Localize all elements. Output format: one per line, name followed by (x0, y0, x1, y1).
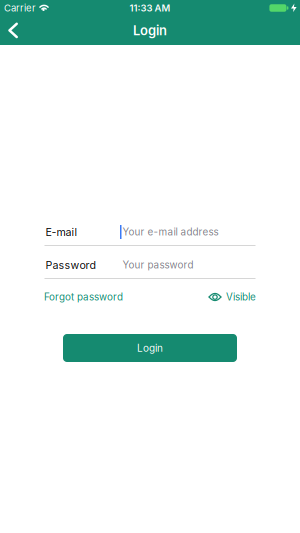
button[interactable]: Forgot password (44, 291, 123, 303)
staticText: Carrier (4, 2, 36, 14)
staticText: Your password (122, 259, 193, 271)
staticText: Password (45, 258, 96, 271)
button[interactable]: Back (0, 16, 26, 45)
staticText: Login (137, 342, 163, 354)
button[interactable]: Visible (208, 291, 256, 303)
staticText: 11:33 AM (129, 2, 170, 14)
staticText: Login (133, 23, 167, 38)
staticText: Your e-mail address (122, 226, 218, 238)
button[interactable]: Login (63, 334, 237, 362)
staticText: E-mail (45, 225, 77, 238)
staticText: Visible (226, 291, 256, 303)
staticText: Forgot password (44, 291, 123, 303)
